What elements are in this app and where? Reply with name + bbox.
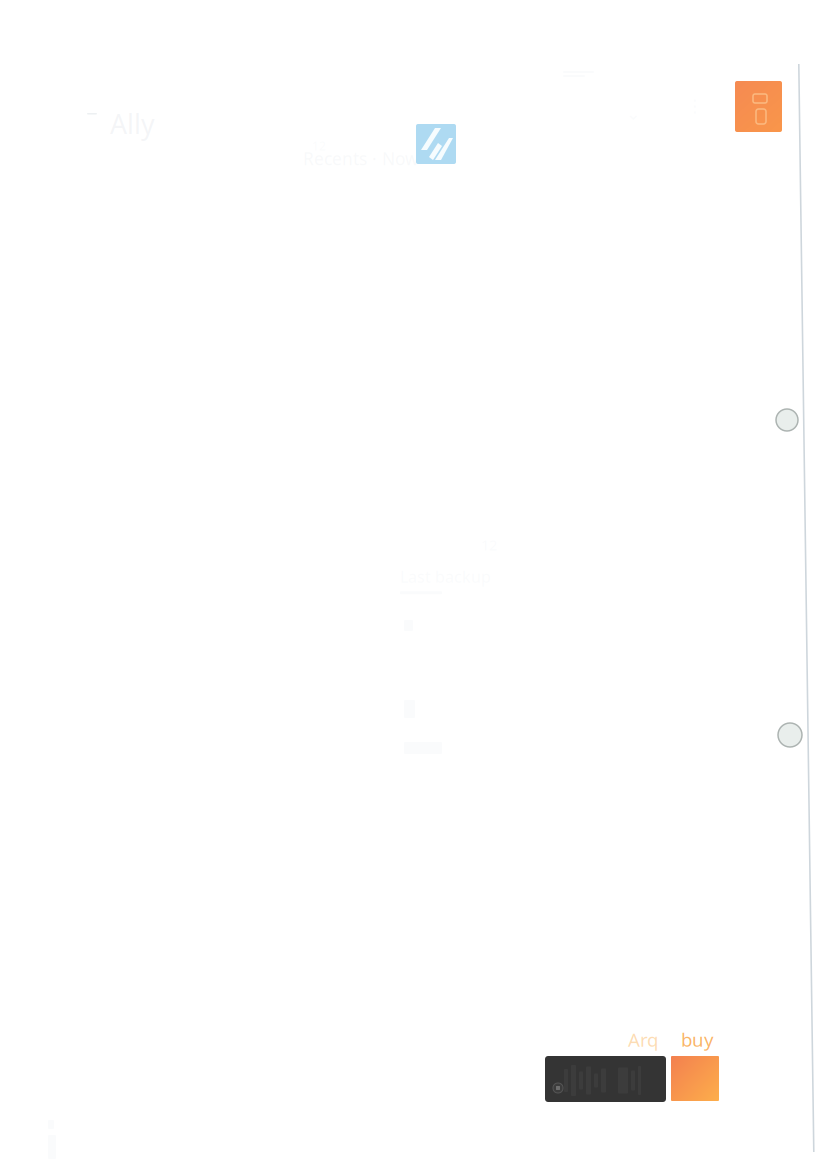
staticText: buy [681,1027,714,1052]
staticText: Ally [110,106,155,141]
button[interactable]: Open shortcut [416,124,456,164]
button[interactable]: Step one [776,409,798,431]
button[interactable]: Ally [110,106,155,141]
button[interactable]: Album artwork [671,1056,719,1101]
button[interactable]: Devices [735,81,782,132]
staticText: Arq [628,1027,658,1052]
button[interactable]: Step two [778,723,802,747]
staticText: Recents · Now [303,147,419,170]
button[interactable]: Now playing [545,1056,666,1102]
